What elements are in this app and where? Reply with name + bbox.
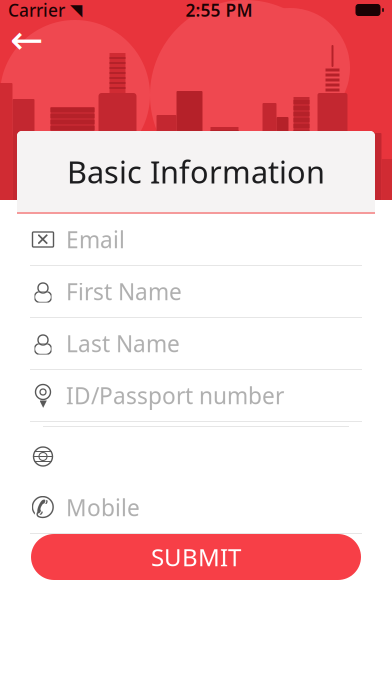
staticText: ▾	[39, 395, 46, 411]
staticText: 2:55 PM	[185, 0, 252, 21]
button[interactable]: Last Name	[17, 318, 375, 369]
button[interactable]: ▾	[17, 370, 375, 421]
staticText: First Name	[66, 276, 182, 306]
staticText: Mobile	[66, 492, 140, 522]
staticText: ✆	[30, 491, 55, 524]
staticText: SUBMIT	[151, 541, 241, 573]
staticText: ←	[10, 17, 44, 63]
button[interactable]: ✆	[17, 482, 375, 533]
staticText: ID/Passport number	[66, 380, 284, 410]
button[interactable]	[17, 431, 375, 482]
staticText: ◥	[70, 1, 82, 19]
staticText: ✕	[35, 230, 50, 249]
button[interactable]: SUBMIT	[31, 534, 361, 580]
button[interactable]: First Name	[17, 266, 375, 317]
staticText: Basic Information	[67, 151, 325, 192]
staticText: Email	[66, 224, 125, 254]
staticText: Last Name	[66, 328, 180, 358]
button[interactable]: Back	[0, 20, 54, 60]
button[interactable]: ✕	[17, 214, 375, 265]
staticText: Carrier	[8, 0, 65, 21]
